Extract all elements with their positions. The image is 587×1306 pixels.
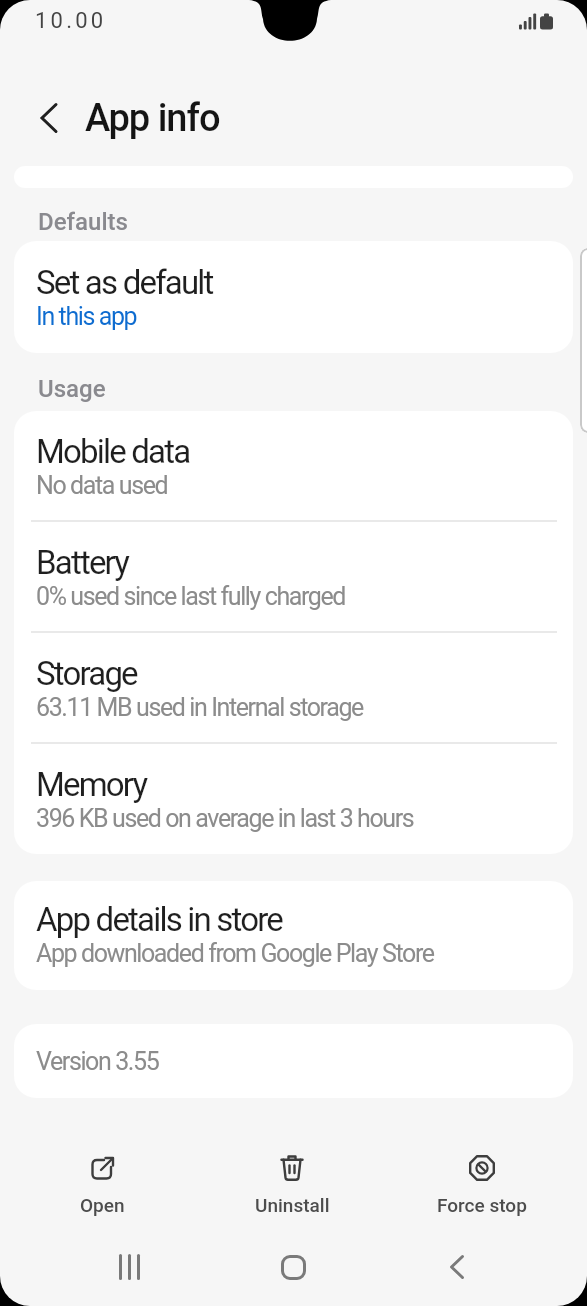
staticText: Force stop — [437, 1194, 527, 1216]
staticText: Version 3.55 — [36, 1047, 159, 1076]
staticText: In this app — [36, 302, 137, 331]
staticText: No data used — [36, 471, 168, 500]
staticText: Defaults — [38, 208, 128, 236]
staticText: 10.00 — [35, 8, 107, 34]
button[interactable]: Force stop — [387, 1155, 577, 1216]
staticText: App details in store — [36, 900, 283, 939]
staticText: 396 KB used on average in last 3 hours — [36, 804, 414, 833]
button[interactable]: Mobile data — [14, 411, 573, 520]
staticText: Set as default — [36, 263, 213, 302]
staticText: Uninstall — [255, 1194, 330, 1216]
button[interactable] — [211, 1254, 375, 1280]
staticText: Open — [80, 1194, 125, 1216]
button[interactable] — [375, 1254, 539, 1280]
button[interactable]: App details in store — [14, 881, 573, 990]
button[interactable] — [48, 1254, 211, 1280]
staticText: 0% used since last fully charged — [36, 582, 346, 611]
staticText: Memory — [36, 765, 147, 804]
button[interactable]: Storage — [14, 633, 573, 742]
button[interactable]: Open — [8, 1155, 197, 1216]
button[interactable]: Set as default — [14, 241, 573, 353]
staticText: App downloaded from Google Play Store — [36, 939, 434, 968]
staticText: 63.11 MB used in Internal storage — [36, 693, 363, 722]
staticText: Storage — [36, 654, 137, 693]
staticText: Usage — [38, 375, 106, 403]
button[interactable]: Uninstall — [197, 1155, 387, 1216]
staticText: App info — [85, 96, 220, 141]
staticText: Mobile data — [36, 432, 190, 471]
button[interactable] — [0, 94, 58, 142]
staticText: Battery — [36, 543, 129, 582]
button[interactable]: Battery — [14, 522, 573, 631]
button[interactable]: Memory — [14, 744, 573, 854]
